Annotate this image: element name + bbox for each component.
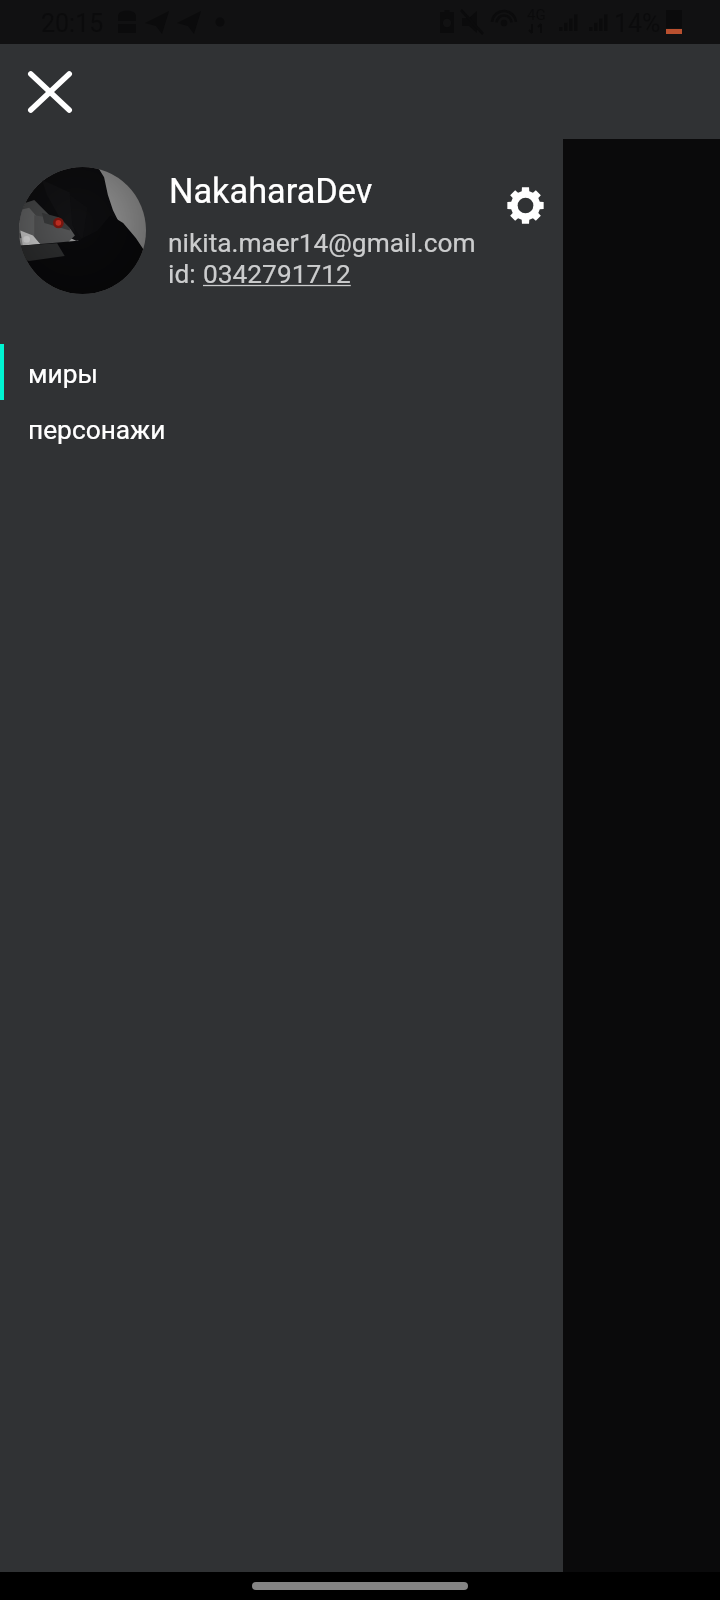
staticText: персонажи: [28, 415, 166, 446]
button[interactable]: Close: [2, 44, 98, 140]
staticText: NakaharaDev: [169, 171, 373, 211]
button[interactable]: миры: [0, 344, 563, 400]
staticText: nikita.maer14@gmail.com: [168, 228, 476, 259]
button[interactable]: персонажи: [0, 400, 563, 456]
staticText: 0342791712: [203, 259, 351, 290]
button[interactable]: Settings: [477, 157, 573, 253]
staticText: id:: [168, 259, 203, 290]
staticText: миры: [28, 359, 98, 390]
